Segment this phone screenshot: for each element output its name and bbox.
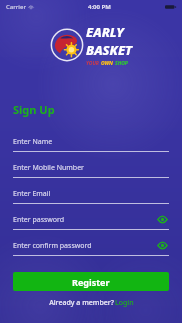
staticText: Enter Mobile Number — [13, 163, 85, 173]
staticText: EARLY — [86, 23, 124, 41]
staticText: Sign Up — [13, 102, 55, 117]
staticText: OWN — [101, 60, 115, 67]
staticText: SHOP — [115, 60, 128, 67]
button[interactable]: Enter confirm password — [13, 236, 169, 256]
staticText: Login — [115, 298, 134, 308]
button[interactable]: Show password — [156, 213, 169, 226]
staticText: Already a member? — [48, 298, 115, 308]
staticText: Enter password — [13, 215, 65, 225]
button[interactable]: Login — [115, 298, 134, 308]
button[interactable]: Show password — [156, 239, 169, 252]
staticText: YOUR — [86, 60, 101, 67]
button[interactable]: Enter password — [13, 210, 169, 230]
button[interactable]: Register — [13, 272, 169, 291]
button[interactable]: Enter Email — [13, 184, 169, 204]
staticText: BASKET — [86, 41, 133, 59]
staticText: Carrier — [6, 3, 26, 11]
staticText: Enter confirm password — [13, 241, 92, 251]
staticText: Register — [72, 276, 110, 288]
button[interactable]: Enter Name — [13, 132, 169, 152]
staticText: Enter Name — [13, 137, 53, 147]
staticText: Enter Email — [13, 189, 51, 199]
button[interactable]: Enter Mobile Number — [13, 158, 169, 178]
staticText: 4:00 PM — [88, 3, 111, 11]
